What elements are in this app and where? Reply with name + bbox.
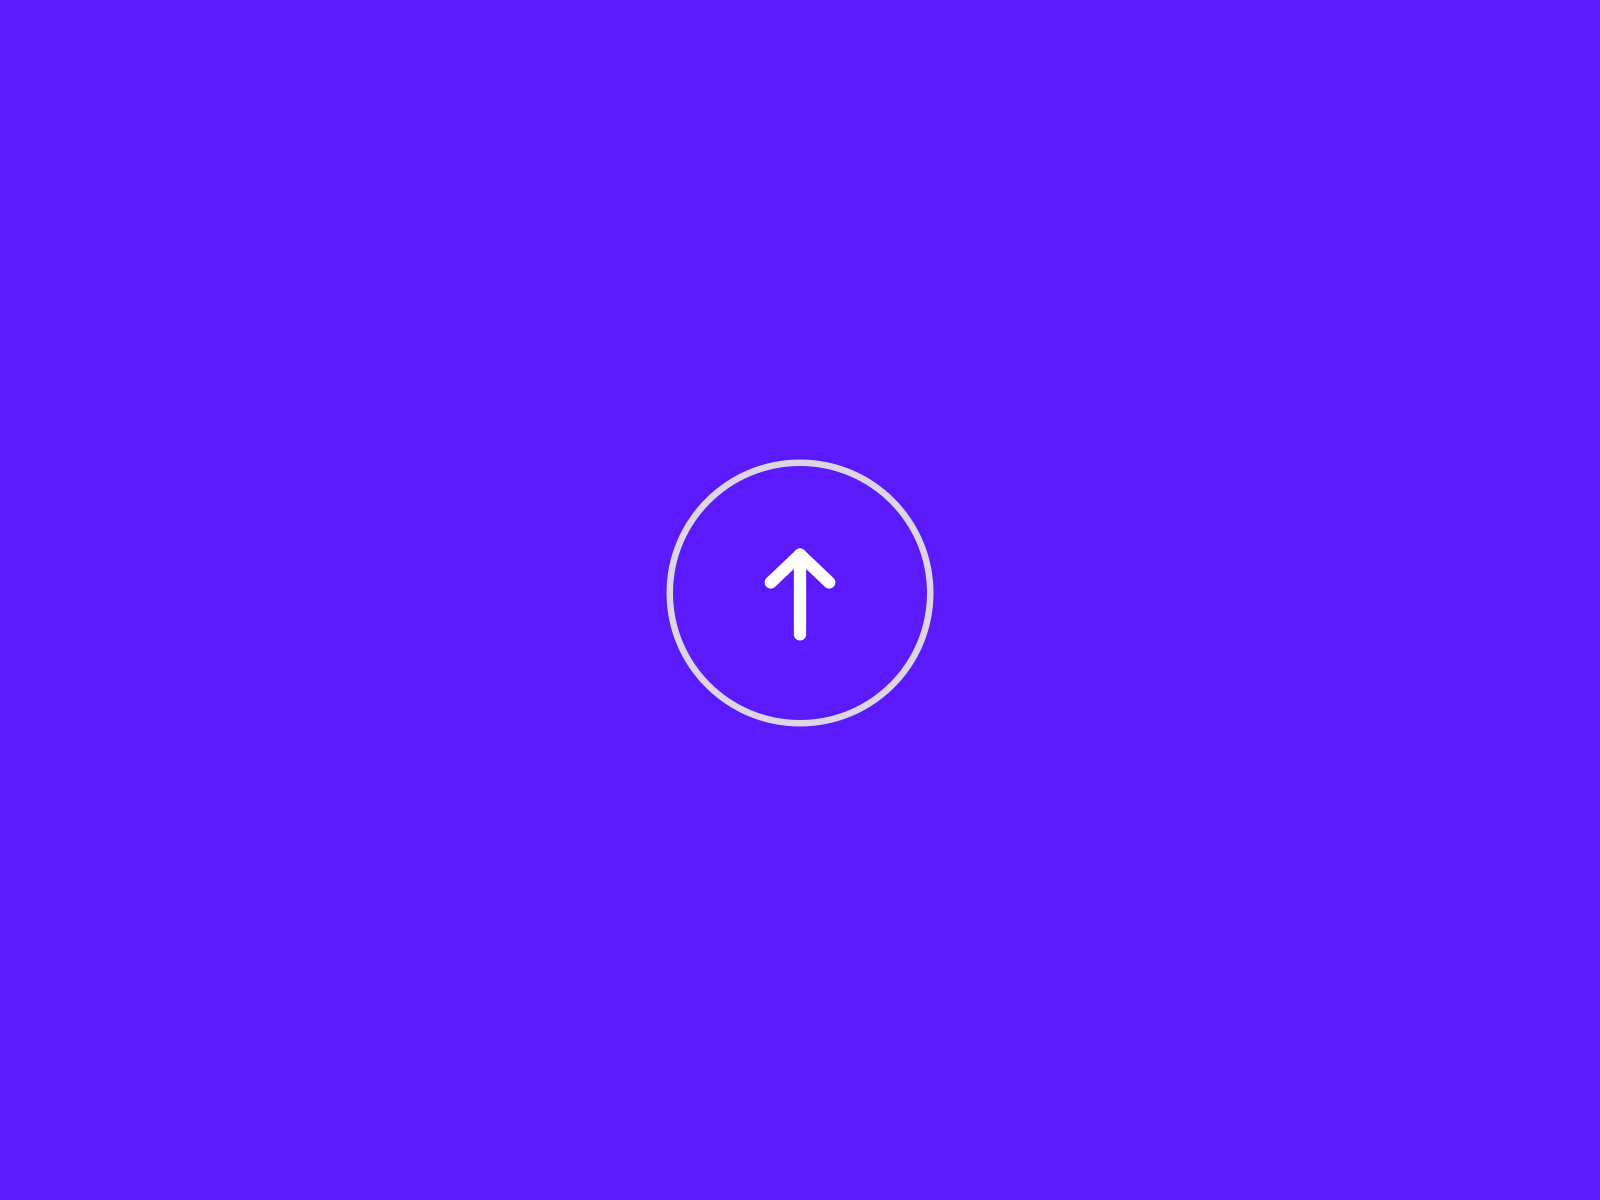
button[interactable]: Back to top (666, 459, 933, 726)
